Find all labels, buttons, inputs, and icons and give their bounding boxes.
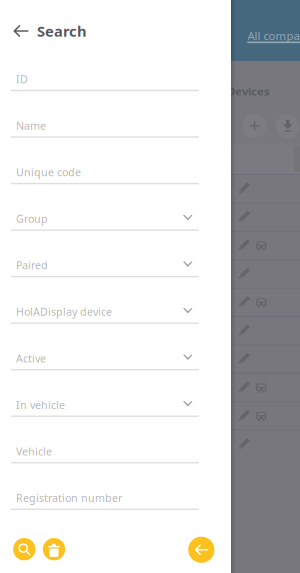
staticText: ID (16, 72, 28, 86)
staticText: In vehicle (16, 397, 65, 412)
staticText: Registration number (16, 491, 122, 505)
staticText: All companies (248, 28, 300, 43)
staticText: Active (16, 351, 46, 365)
staticText: Group (16, 211, 48, 226)
button[interactable]: Back (5, 16, 37, 46)
staticText: Devices (227, 83, 270, 99)
staticText: Vehicle (16, 444, 52, 458)
staticText: Unique code (16, 165, 81, 179)
staticText: HolADisplay device (16, 304, 112, 319)
staticText: Name (16, 118, 46, 133)
button[interactable]: Search (13, 538, 35, 560)
staticText: Search (37, 21, 87, 41)
button[interactable]: Clear (43, 538, 65, 560)
button[interactable]: Go back (188, 537, 214, 563)
staticText: Paired (16, 258, 48, 272)
